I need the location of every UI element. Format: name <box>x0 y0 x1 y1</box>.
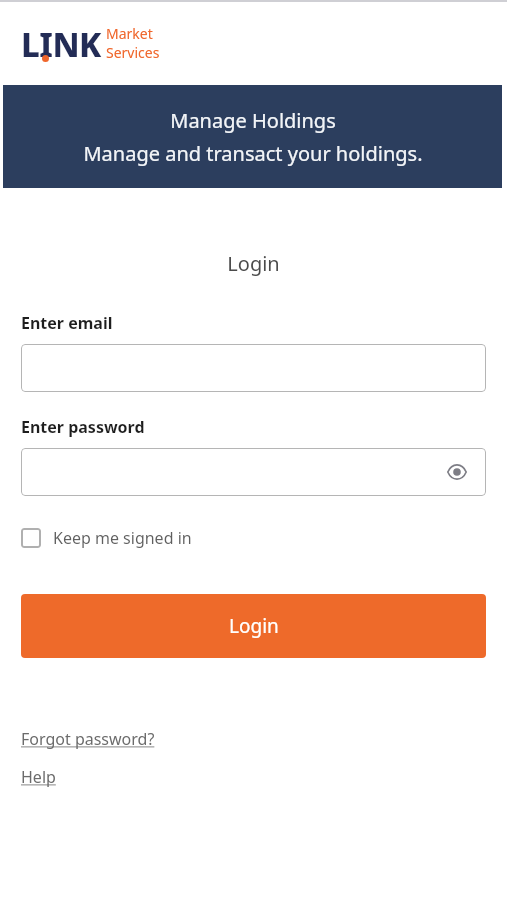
button[interactable]: Forgot password? <box>21 728 155 750</box>
button[interactable]: Show password <box>442 457 472 487</box>
button[interactable]: Help <box>21 766 56 788</box>
staticText: Manage Holdings <box>170 107 336 134</box>
staticText: Login <box>0 250 507 277</box>
staticText: Services <box>106 43 160 62</box>
staticText: Help <box>21 766 56 788</box>
button[interactable]: Keep me signed in <box>21 527 192 549</box>
staticText: LINK <box>21 22 101 67</box>
staticText: Enter password <box>21 416 145 438</box>
staticText: Forgot password? <box>21 728 155 750</box>
button[interactable]: Show password <box>21 448 486 496</box>
button[interactable]: Login <box>21 594 486 658</box>
staticText: Manage and transact your holdings. <box>83 140 423 167</box>
button[interactable] <box>21 344 486 392</box>
staticText: Market <box>106 24 153 43</box>
staticText: Login <box>229 613 279 639</box>
staticText: Keep me signed in <box>53 527 192 549</box>
staticText: Enter email <box>21 312 113 334</box>
